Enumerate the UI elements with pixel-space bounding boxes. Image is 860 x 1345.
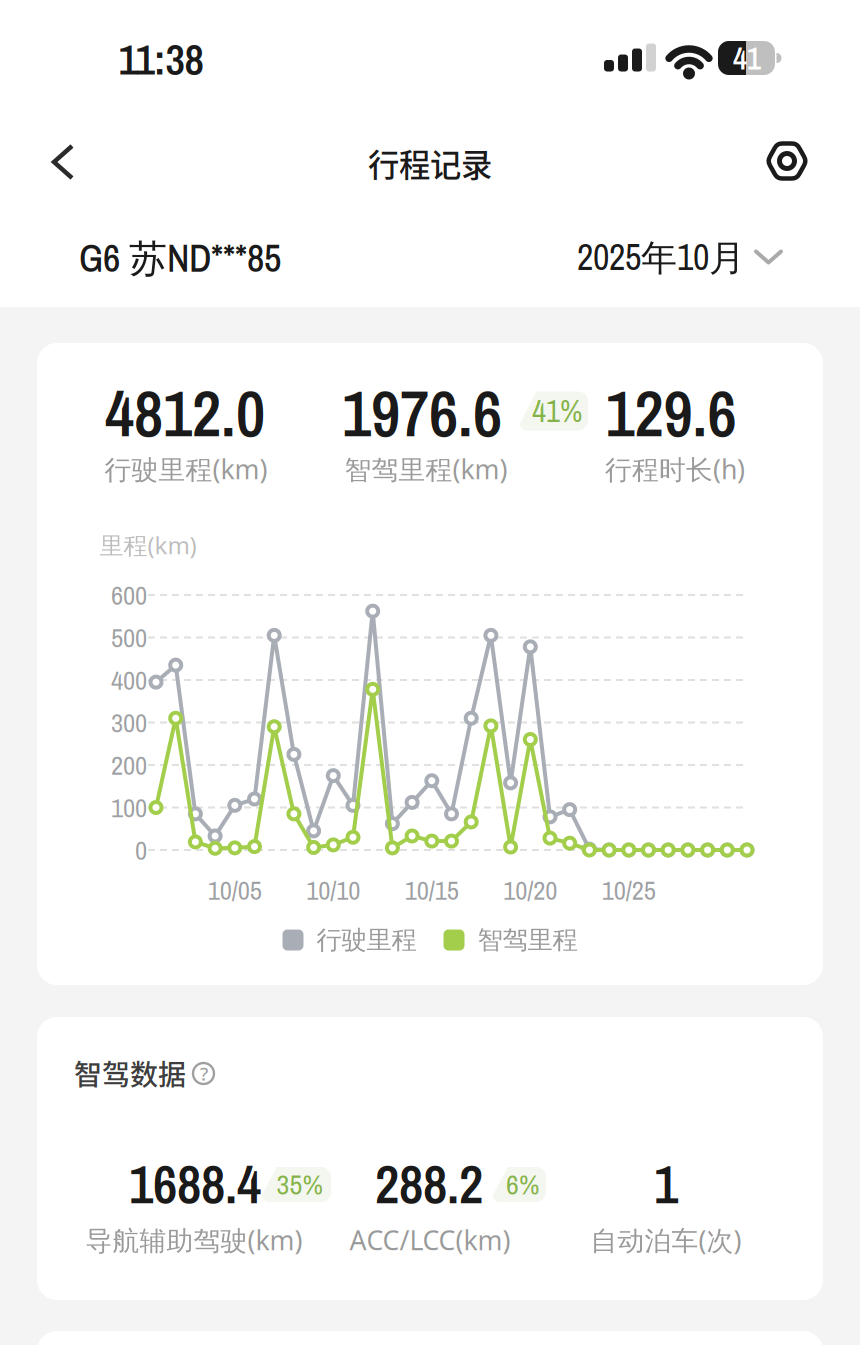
staticText: 400 xyxy=(111,662,147,698)
button[interactable]: Help xyxy=(191,1061,217,1087)
staticText: ? xyxy=(200,1061,208,1086)
staticText: 300 xyxy=(111,704,147,740)
staticText: 288.2 xyxy=(375,1148,483,1220)
staticText: 行程时长(h) xyxy=(605,451,745,487)
staticText: 10/05 xyxy=(208,872,262,908)
staticText: 10/10 xyxy=(306,872,360,908)
staticText: 10/25 xyxy=(602,872,656,908)
button[interactable]: 2025年10月 xyxy=(577,233,781,281)
staticText: 0 xyxy=(135,832,147,868)
staticText: 1688.4 xyxy=(129,1148,261,1220)
staticText: G6 苏ND***85 xyxy=(79,232,281,284)
staticText: 自动泊车(次) xyxy=(590,1222,741,1258)
staticText: 11:38 xyxy=(118,30,203,88)
staticText: 129.6 xyxy=(605,370,736,456)
staticText: 行驶里程 xyxy=(316,924,416,955)
staticText: 智驾里程 xyxy=(477,924,577,955)
staticText: 500 xyxy=(111,619,147,655)
staticText: 1 xyxy=(654,1148,678,1220)
staticText: 导航辅助驾驶(km) xyxy=(85,1222,302,1258)
staticText: 智驾里程(km) xyxy=(344,451,507,487)
staticText: 行程记录 xyxy=(368,140,492,186)
staticText: 行驶里程(km) xyxy=(104,451,267,487)
staticText: 2025年10月 xyxy=(577,233,745,281)
staticText: 600 xyxy=(111,577,147,613)
staticText: 41% xyxy=(532,390,582,432)
staticText: 智驾数据 xyxy=(74,1053,186,1093)
button[interactable]: Settings xyxy=(765,139,809,183)
staticText: 10/20 xyxy=(503,872,557,908)
button[interactable]: G6 苏ND***85 xyxy=(79,232,281,284)
staticText: 10/15 xyxy=(405,872,459,908)
staticText: 4812.0 xyxy=(105,370,265,456)
staticText: 35% xyxy=(276,1166,322,1203)
staticText: 41 xyxy=(733,38,761,79)
staticText: 1976.6 xyxy=(342,370,502,456)
staticText: 6% xyxy=(506,1166,539,1203)
staticText: 里程(km) xyxy=(99,529,196,561)
staticText: ACC/LCC(km) xyxy=(349,1222,510,1258)
staticText: 200 xyxy=(111,747,147,783)
staticText: 100 xyxy=(111,789,147,825)
button[interactable]: Back xyxy=(41,140,85,184)
